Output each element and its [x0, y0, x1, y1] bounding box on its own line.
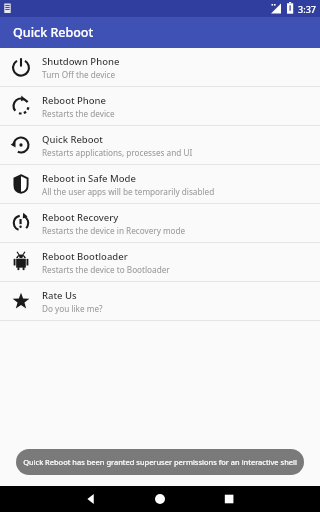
button[interactable]: Reboot Phone: [0, 87, 320, 125]
staticText: Restarts the device in Recovery mode: [42, 225, 186, 236]
staticText: 3:37: [298, 3, 316, 15]
staticText: Reboot Recovery: [42, 211, 119, 224]
staticText: Turn Off the device: [42, 69, 115, 80]
staticText: Shutdown Phone: [42, 55, 120, 68]
staticText: Do you like me?: [42, 303, 103, 314]
staticText: Quick Reboot: [13, 24, 94, 41]
staticText: Reboot Bootloader: [42, 250, 128, 263]
staticText: Quick Reboot has been granted superuser …: [23, 457, 297, 467]
staticText: Reboot Phone: [42, 94, 107, 107]
staticText: Reboot in Safe Mode: [42, 172, 136, 185]
button[interactable]: Reboot Recovery: [0, 204, 320, 242]
button[interactable]: Reboot in Safe Mode: [0, 165, 320, 203]
button[interactable]: Reboot Bootloader: [0, 243, 320, 281]
button[interactable]: Rate Us: [0, 282, 320, 320]
staticText: Restarts applications, processes and UI: [42, 147, 193, 158]
staticText: Rate Us: [42, 289, 77, 302]
button[interactable]: Quick Reboot: [0, 126, 320, 164]
staticText: Restarts the device: [42, 108, 115, 119]
button[interactable]: Shutdown Phone: [0, 48, 320, 86]
staticText: Quick Reboot: [42, 133, 104, 146]
staticText: Restarts the device to Bootloader: [42, 264, 170, 275]
staticText: All the user apps will be temporarily di…: [42, 186, 215, 197]
